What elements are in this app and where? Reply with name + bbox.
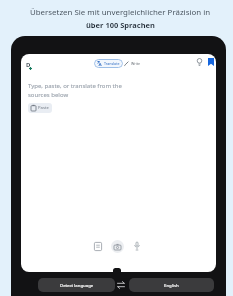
button[interactable] (196, 58, 203, 66)
button[interactable]: Paste (31, 103, 49, 113)
staticText: Write (131, 61, 141, 66)
button[interactable]: Detect language (38, 278, 115, 292)
staticText: Übersetzen Sie mit unvergleichlicher Prä… (30, 7, 211, 18)
staticText: Type, paste, or translate from the sourc… (28, 82, 122, 98)
staticText: English (164, 282, 179, 288)
button[interactable] (111, 240, 124, 253)
staticText: Translate (104, 61, 120, 66)
button[interactable]: Translate (97, 59, 120, 68)
staticText: Paste (38, 105, 49, 111)
button[interactable]: English (129, 278, 214, 292)
button[interactable] (94, 242, 102, 251)
staticText: über 100 Sprachen (86, 20, 155, 30)
staticText: Detect language (60, 282, 94, 288)
staticText: D (26, 61, 31, 69)
button[interactable] (208, 58, 214, 66)
button[interactable] (134, 242, 140, 251)
button[interactable]: Write (124, 59, 141, 68)
